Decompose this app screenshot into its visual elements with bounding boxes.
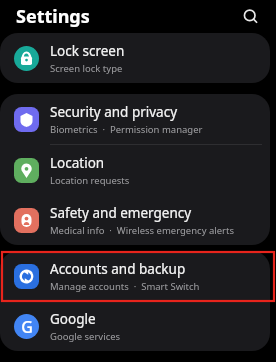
staticText: Lock screen: [50, 42, 125, 60]
staticText: Location requests: [50, 174, 130, 187]
button[interactable]: Security and privacy: [0, 94, 270, 144]
button[interactable]: G: [0, 301, 270, 351]
staticText: Location: [50, 154, 105, 172]
staticText: Settings: [16, 4, 90, 29]
staticText: Google: [50, 310, 96, 328]
staticText: Screen lock type: [50, 62, 123, 75]
staticText: Accounts and backup: [50, 260, 186, 278]
staticText: Manage accounts · Smart Switch: [50, 280, 200, 293]
button[interactable]: Location: [0, 145, 270, 195]
staticText: Safety and emergency: [50, 204, 192, 222]
button[interactable]: Accounts and backup: [0, 251, 270, 301]
staticText: Medical info · Wireless emergency alerts: [50, 224, 235, 237]
button[interactable]: Lock screen: [0, 33, 270, 83]
button[interactable]: Search: [238, 4, 264, 30]
staticText: Biometrics · Permission manager: [50, 123, 203, 136]
staticText: Google services: [50, 330, 121, 343]
button[interactable]: Safety and emergency: [0, 195, 270, 245]
staticText: Security and privacy: [50, 103, 178, 121]
staticText: G: [21, 316, 33, 338]
